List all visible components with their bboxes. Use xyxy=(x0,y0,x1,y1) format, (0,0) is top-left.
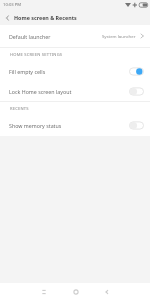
button[interactable]: Show memory status xyxy=(0,115,150,136)
button[interactable]: Default launcher xyxy=(0,25,150,47)
staticText: Fill empty cells xyxy=(9,68,46,75)
staticText: RECENTS xyxy=(10,106,29,112)
staticText: Lock Home screen layout xyxy=(9,88,72,95)
button[interactable]: Fill empty cells xyxy=(0,61,150,81)
button[interactable]: Recents xyxy=(35,283,52,300)
staticText: Show memory status xyxy=(9,122,62,129)
button[interactable]: Home xyxy=(67,283,84,300)
staticText: Home screen & Recents xyxy=(14,14,77,21)
staticText: 10:03 PM xyxy=(3,2,22,8)
button[interactable]: Back xyxy=(0,11,14,25)
button[interactable]: Lock Home screen layout xyxy=(0,81,150,101)
button[interactable]: Back xyxy=(98,283,115,300)
staticText: HOME SCREEN SETTINGS xyxy=(10,52,63,58)
staticText: Default launcher xyxy=(9,33,51,40)
staticText: System launcher xyxy=(102,33,136,39)
